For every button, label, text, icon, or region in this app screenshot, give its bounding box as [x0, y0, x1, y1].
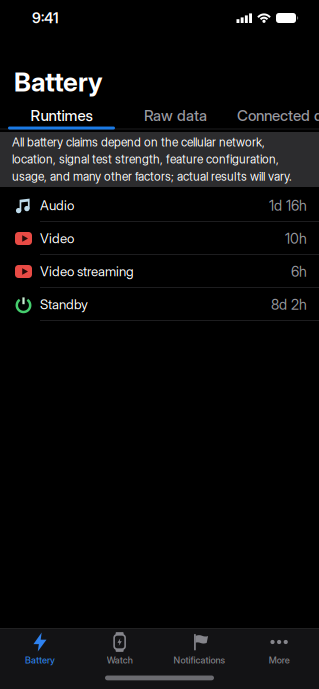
staticText: Standby: [40, 296, 88, 313]
staticText: Watch: [107, 654, 133, 666]
button[interactable]: Audio: [0, 189, 319, 222]
staticText: Notifications: [173, 654, 225, 666]
button[interactable]: More: [239, 632, 319, 676]
staticText: 1d 16h: [269, 197, 307, 214]
staticText: location, signal test strength, feature …: [12, 152, 279, 166]
staticText: 9:41: [32, 9, 59, 27]
staticText: 6h: [291, 263, 307, 280]
button[interactable]: Video streaming: [0, 255, 319, 288]
staticText: All battery claims depend on the cellula…: [12, 135, 265, 149]
staticText: Raw data: [144, 106, 207, 125]
staticText: Battery: [25, 654, 55, 666]
staticText: 8d 2h: [271, 296, 307, 313]
button[interactable]: Runtimes: [8, 102, 115, 128]
staticText: 10h: [285, 230, 307, 247]
staticText: More: [269, 654, 290, 666]
staticText: Battery: [14, 66, 103, 98]
button[interactable]: Connected devices: [237, 102, 319, 128]
staticText: Audio: [40, 197, 74, 214]
staticText: Runtimes: [30, 106, 92, 125]
button[interactable]: Standby: [0, 288, 319, 321]
button[interactable]: Battery: [0, 632, 80, 676]
staticText: Video streaming: [40, 263, 134, 280]
button[interactable]: Notifications: [159, 632, 239, 676]
button[interactable]: Watch: [80, 632, 160, 676]
button[interactable]: Raw data: [122, 102, 229, 128]
staticText: Video: [40, 230, 74, 247]
button[interactable]: Video: [0, 222, 319, 255]
staticText: usage, and many other factors; actual re…: [12, 169, 292, 183]
staticText: Connected devices: [237, 106, 319, 125]
